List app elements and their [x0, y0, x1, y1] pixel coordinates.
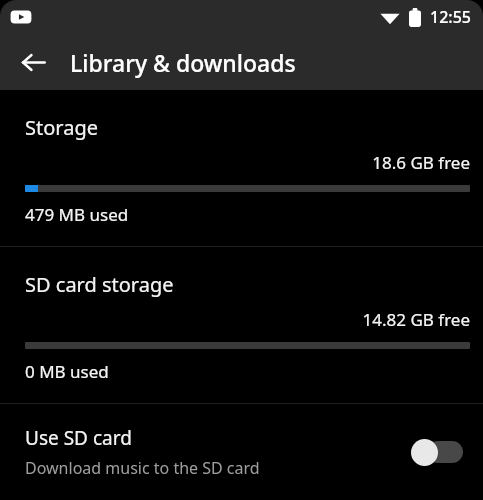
- other: YouTube notification: [8, 8, 34, 26]
- staticText: 479 MB used: [25, 203, 129, 226]
- other: Battery: [409, 8, 421, 27]
- staticText: 12:55: [430, 6, 471, 28]
- staticText: 18.6 GB free: [25, 151, 470, 174]
- button[interactable]: Back: [10, 39, 56, 85]
- staticText: 0 MB used: [25, 360, 109, 383]
- button[interactable]: SD card storage: [0, 247, 483, 403]
- other: Wi-Fi: [380, 9, 400, 25]
- staticText: 14.82 GB free: [25, 308, 470, 331]
- button[interactable]: Use SD card: [0, 404, 483, 500]
- staticText: Use SD card: [25, 425, 132, 451]
- button[interactable]: Use SD card toggle: [409, 435, 465, 469]
- staticText: Download music to the SD card: [25, 457, 260, 479]
- staticText: Storage: [25, 114, 98, 141]
- button[interactable]: Storage: [0, 90, 483, 246]
- staticText: Library & downloads: [70, 47, 296, 78]
- staticText: SD card storage: [25, 271, 174, 298]
